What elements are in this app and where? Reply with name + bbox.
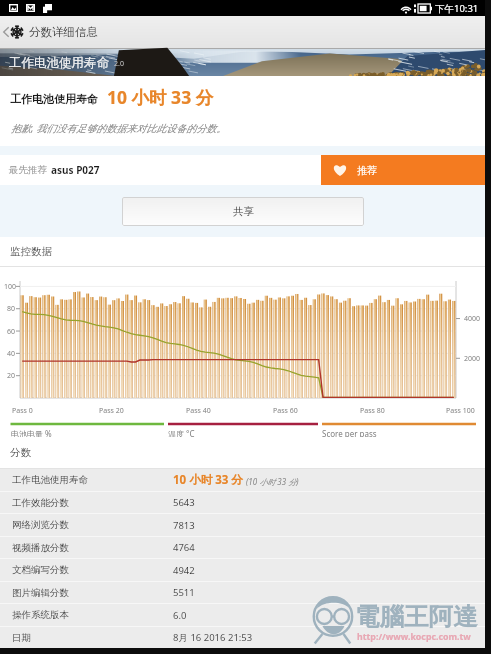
staticText: 7813 (173, 519, 195, 532)
staticText: 共享 (233, 205, 254, 218)
staticText: Pass 40 (186, 406, 211, 416)
staticText: 电池电量 % (11, 428, 52, 439)
other: Back (3, 26, 9, 38)
staticText: 2.0 (114, 59, 124, 69)
staticText: 网络浏览分数 (12, 519, 69, 531)
button[interactable]: 操作系统版本 (0, 604, 485, 626)
staticText: 分数 (10, 446, 31, 459)
staticText: 图片编辑分数 (12, 587, 69, 599)
staticText: asus P027 (51, 163, 100, 177)
button[interactable]: 工作效能分数 (0, 492, 485, 513)
staticText: 2000 (464, 354, 481, 364)
button[interactable]: 视频播放分数 (0, 537, 485, 558)
staticText: Pass 80 (360, 406, 385, 416)
staticText: 温度 °C (168, 428, 195, 439)
button[interactable]: 网络浏览分数 (0, 514, 485, 536)
staticText: 8月 16 2016 21:53 (173, 631, 253, 644)
staticText: 工作电池使用寿命 (10, 92, 98, 106)
button[interactable]: 推荐 (321, 155, 485, 185)
button[interactable]: 图片编辑分数 (0, 582, 485, 603)
staticText: 文档编写分数 (12, 564, 69, 576)
staticText: 10 小时 33 分 (107, 85, 214, 109)
staticText: 4000 (464, 314, 481, 324)
staticText: http://www.kocpc.com.tw (357, 631, 471, 643)
button[interactable]: Back (3, 16, 98, 48)
staticText: 视频播放分数 (12, 542, 69, 554)
staticText: 40 (7, 349, 16, 359)
button[interactable]: 工作电池使用寿命 (0, 469, 485, 491)
button[interactable]: 文档编写分数 (0, 559, 485, 581)
staticText: Pass 20 (99, 406, 124, 416)
staticText: 電腦王阿達 (355, 601, 478, 632)
staticText: 分数详细信息 (29, 25, 98, 39)
staticText: 6.0 (173, 609, 187, 622)
button[interactable]: 共享 (122, 197, 364, 226)
staticText: 工作效能分数 (12, 497, 69, 509)
staticText: 日期 (12, 632, 31, 644)
staticText: 5643 (173, 496, 195, 509)
staticText: 60 (7, 327, 16, 337)
staticText: 监控数据 (10, 245, 52, 258)
staticText: 工作电池使用寿命 (9, 55, 109, 71)
staticText: 4764 (173, 541, 195, 554)
staticText: Score per pass (322, 428, 377, 439)
staticText: 下午10:31 (435, 2, 479, 15)
staticText: 5511 (173, 586, 195, 599)
staticText: Pass 60 (273, 406, 298, 416)
staticText: 10 小时 33 分 (173, 472, 243, 488)
staticText: 抱歉, 我们没有足够的数据来对比此设备的分数。 (11, 121, 227, 135)
staticText: 最先推荐 (9, 164, 47, 176)
staticText: Pass 0 (12, 406, 33, 416)
staticText: 操作系统版本 (12, 609, 69, 621)
staticText: 4942 (173, 564, 195, 577)
staticText: (10 小时 33 分) (246, 476, 299, 487)
staticText: Pass 100 (446, 406, 475, 416)
button[interactable]: 日期 (0, 627, 485, 648)
staticText: 80 (7, 304, 16, 314)
staticText: 100 (4, 282, 17, 292)
staticText: 工作电池使用寿命 (12, 474, 88, 486)
staticText: 推荐 (357, 164, 377, 177)
staticText: 20 (7, 371, 16, 381)
